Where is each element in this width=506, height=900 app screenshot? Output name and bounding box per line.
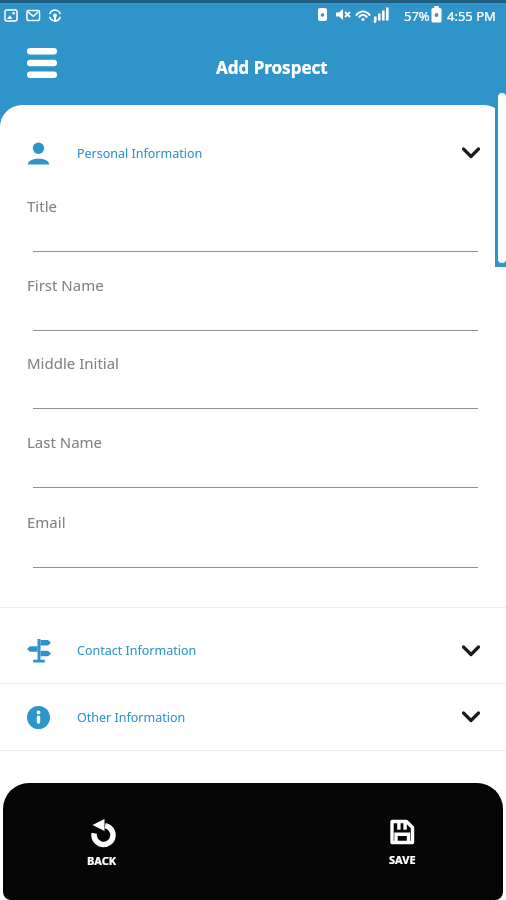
staticText: Title [27, 196, 57, 216]
staticText: 4:55 PM [447, 7, 496, 25]
staticText: Other Information [77, 709, 186, 726]
staticText: Middle Initial [27, 353, 119, 373]
staticText: Last Name [27, 432, 103, 452]
staticText: 57% [404, 7, 430, 25]
button[interactable]: Personal Information [0, 125, 506, 181]
button[interactable]: Contact Information [0, 618, 506, 683]
button[interactable] [17, 38, 67, 88]
staticText: Add Prospect [216, 56, 328, 79]
staticText: First Name [27, 275, 104, 295]
button[interactable]: Last Name [0, 424, 506, 503]
staticText: Email [27, 512, 66, 532]
button[interactable]: First Name [0, 267, 506, 346]
button[interactable]: Email [0, 504, 506, 583]
button[interactable]: BACK [57, 797, 147, 889]
staticText: Contact Information [77, 642, 197, 659]
button[interactable]: Other Information [0, 684, 506, 750]
staticText: Personal Information [77, 145, 203, 162]
button[interactable]: Middle Initial [0, 345, 506, 424]
button[interactable]: SAVE [357, 797, 447, 889]
staticText: SAVE [389, 852, 416, 867]
staticText: BACK [87, 853, 117, 868]
button[interactable]: Title [0, 188, 506, 267]
